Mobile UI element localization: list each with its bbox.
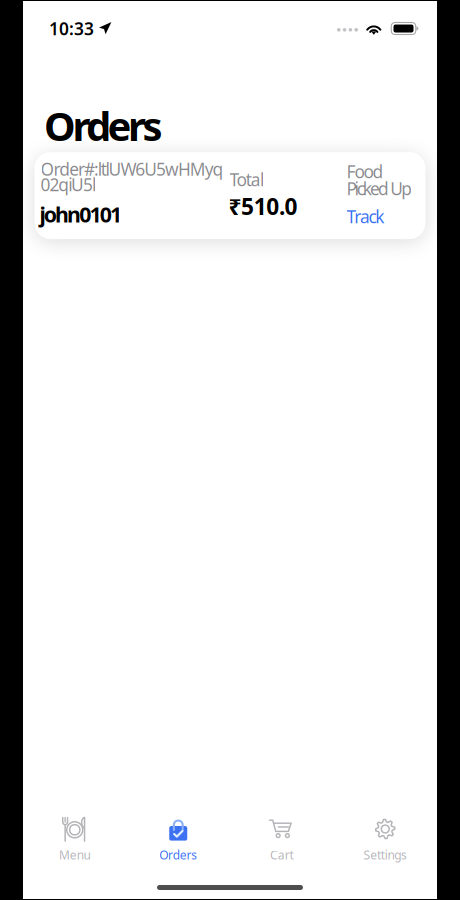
staticText: 10:33 (49, 17, 94, 40)
staticText: Settings (363, 847, 407, 863)
staticText: Food (346, 160, 383, 183)
staticText: Cart (270, 847, 293, 863)
staticText: Menu (59, 847, 90, 863)
button[interactable]: Track (34, 152, 425, 239)
staticText: Picked Up (346, 177, 412, 200)
button[interactable]: Orders (126, 816, 230, 865)
staticText: 02qiU5l (40, 173, 96, 196)
staticText: Orders (159, 847, 197, 863)
button[interactable]: Settings (333, 816, 437, 865)
button[interactable]: Menu (23, 816, 126, 865)
staticText: john0101 (39, 200, 122, 228)
staticText: Track (346, 205, 384, 228)
staticText: Orders (44, 99, 162, 152)
staticText: Total (229, 168, 264, 191)
staticText: Order#:ltlUW6U5wHMyq (40, 158, 224, 181)
staticText: ₹510.0 (228, 191, 297, 221)
button[interactable]: Cart (230, 816, 333, 865)
